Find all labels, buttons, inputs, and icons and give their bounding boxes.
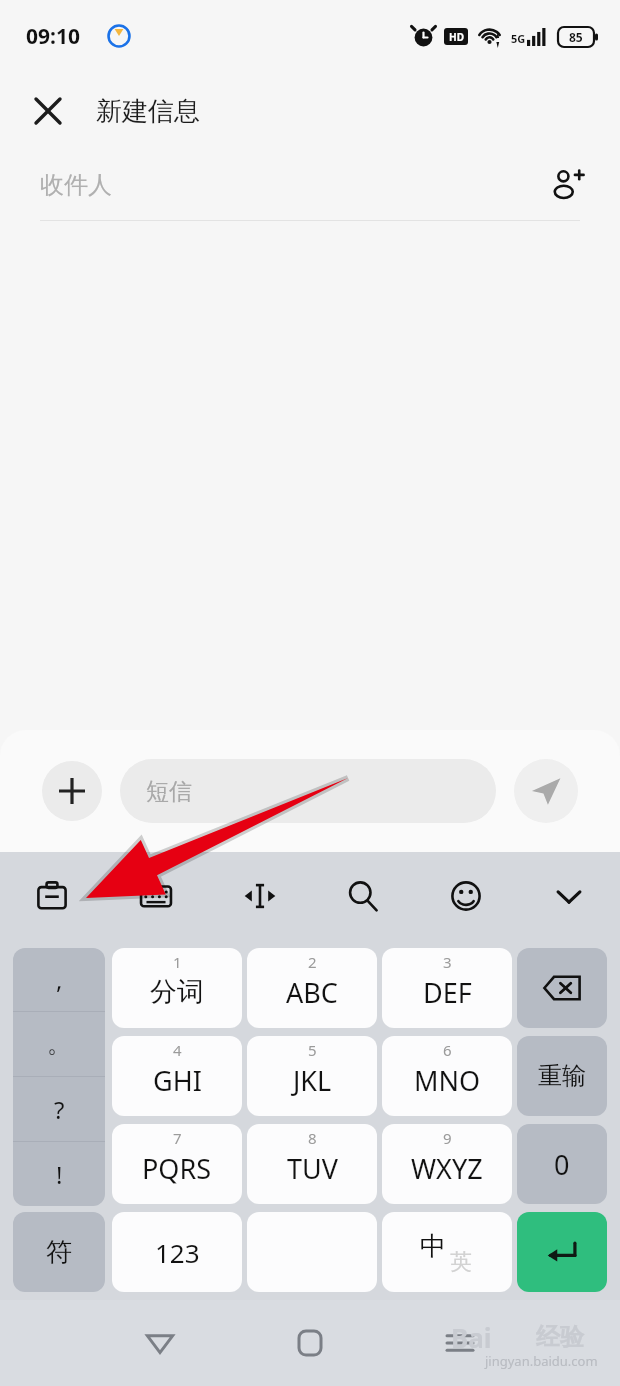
button[interactable]: , <box>13 948 105 1011</box>
button[interactable]: 重输 <box>517 1036 607 1116</box>
button[interactable]: Keyboard layout <box>104 852 208 940</box>
staticText: 09:10 <box>26 22 80 51</box>
button[interactable]: 1 <box>112 948 242 1028</box>
button[interactable]: 8 <box>247 1124 377 1204</box>
staticText: 英 <box>450 1248 472 1276</box>
staticText: ! <box>56 1158 63 1191</box>
button[interactable] <box>247 1212 377 1292</box>
staticText: 新建信息 <box>96 95 200 128</box>
button[interactable]: Enter <box>517 1212 607 1292</box>
staticText: HD <box>449 30 464 44</box>
staticText: ? <box>54 1093 65 1126</box>
button[interactable]: 4 <box>112 1036 242 1116</box>
staticText: 3 <box>443 952 452 972</box>
staticText: TUV <box>287 1150 338 1187</box>
staticText: 分词 <box>150 975 204 1009</box>
staticText: 2 <box>308 952 317 972</box>
staticText: 经验 <box>536 1322 584 1352</box>
button[interactable]: 123 <box>112 1212 242 1292</box>
staticText: GHI <box>153 1062 202 1099</box>
staticText: Bai <box>451 1320 492 1355</box>
staticText: JKL <box>293 1062 332 1099</box>
staticText: 重输 <box>538 1061 586 1091</box>
button[interactable]: ! <box>13 1142 105 1206</box>
button[interactable]: Recent apps <box>445 1328 475 1358</box>
button[interactable]: 收件人 <box>0 150 620 220</box>
button[interactable]: Back <box>145 1328 175 1358</box>
button[interactable]: 中 <box>382 1212 512 1292</box>
staticText: 5 <box>308 1040 317 1060</box>
button[interactable]: Add attachment <box>42 761 102 821</box>
staticText: jingyan.baidu.com <box>485 1352 598 1370</box>
staticText: DEF <box>423 974 472 1011</box>
button[interactable]: Search <box>311 852 414 940</box>
staticText: 7 <box>173 1128 182 1148</box>
staticText: 符 <box>46 1236 72 1269</box>
button[interactable]: Home <box>296 1329 324 1357</box>
button[interactable]: 符 <box>13 1212 105 1292</box>
staticText: 1 <box>173 952 182 972</box>
staticText: , <box>56 963 63 996</box>
button[interactable]: Clipboard <box>0 852 104 940</box>
button[interactable]: Close <box>22 85 74 137</box>
button[interactable]: Emoji <box>414 852 517 940</box>
staticText: 6 <box>443 1040 452 1060</box>
staticText: 0 <box>554 1146 570 1183</box>
button[interactable]: 2 <box>247 948 377 1028</box>
staticText: 5G <box>511 31 526 46</box>
button[interactable]: Send <box>514 759 578 823</box>
button[interactable]: 。 <box>13 1012 105 1076</box>
button[interactable]: 0 <box>517 1124 607 1204</box>
staticText: 收件人 <box>40 170 540 200</box>
button[interactable]: Cursor move <box>208 852 311 940</box>
button[interactable]: Backspace <box>517 948 607 1028</box>
staticText: 9 <box>443 1128 452 1148</box>
button[interactable]: 3 <box>382 948 512 1028</box>
staticText: 123 <box>155 1235 200 1270</box>
staticText: MNO <box>414 1062 481 1099</box>
button[interactable]: 6 <box>382 1036 512 1116</box>
staticText: 85 <box>569 29 583 45</box>
staticText: 中 <box>420 1230 446 1263</box>
button[interactable]: 5 <box>247 1036 377 1116</box>
staticText: 8 <box>308 1128 317 1148</box>
staticText: WXYZ <box>411 1150 483 1187</box>
staticText: 4 <box>173 1040 182 1060</box>
button[interactable]: ? <box>13 1077 105 1141</box>
button[interactable]: Add contact <box>540 158 594 212</box>
button[interactable]: Hide keyboard <box>517 852 620 940</box>
staticText: 。 <box>47 1029 71 1059</box>
button[interactable]: 9 <box>382 1124 512 1204</box>
staticText: ABC <box>286 974 338 1011</box>
staticText: PQRS <box>142 1150 212 1187</box>
button[interactable]: 短信 <box>120 759 496 823</box>
button[interactable]: 7 <box>112 1124 242 1204</box>
staticText: 短信 <box>146 777 192 806</box>
